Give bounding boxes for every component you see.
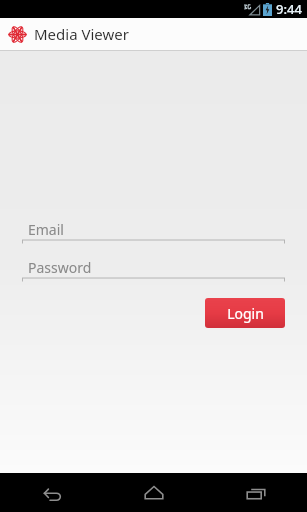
staticText: 9:44 (276, 0, 302, 18)
button[interactable]: Back (0, 473, 103, 512)
button[interactable]: Login (205, 298, 285, 328)
staticText: Email (28, 220, 64, 239)
staticText: Media Viewer (34, 24, 129, 44)
staticText: Password (28, 258, 92, 277)
button[interactable]: Home (103, 473, 205, 512)
button[interactable]: Recent apps (205, 473, 307, 512)
button[interactable]: Password (22, 257, 285, 282)
button[interactable]: Email (22, 219, 285, 244)
staticText: Login (227, 304, 264, 323)
